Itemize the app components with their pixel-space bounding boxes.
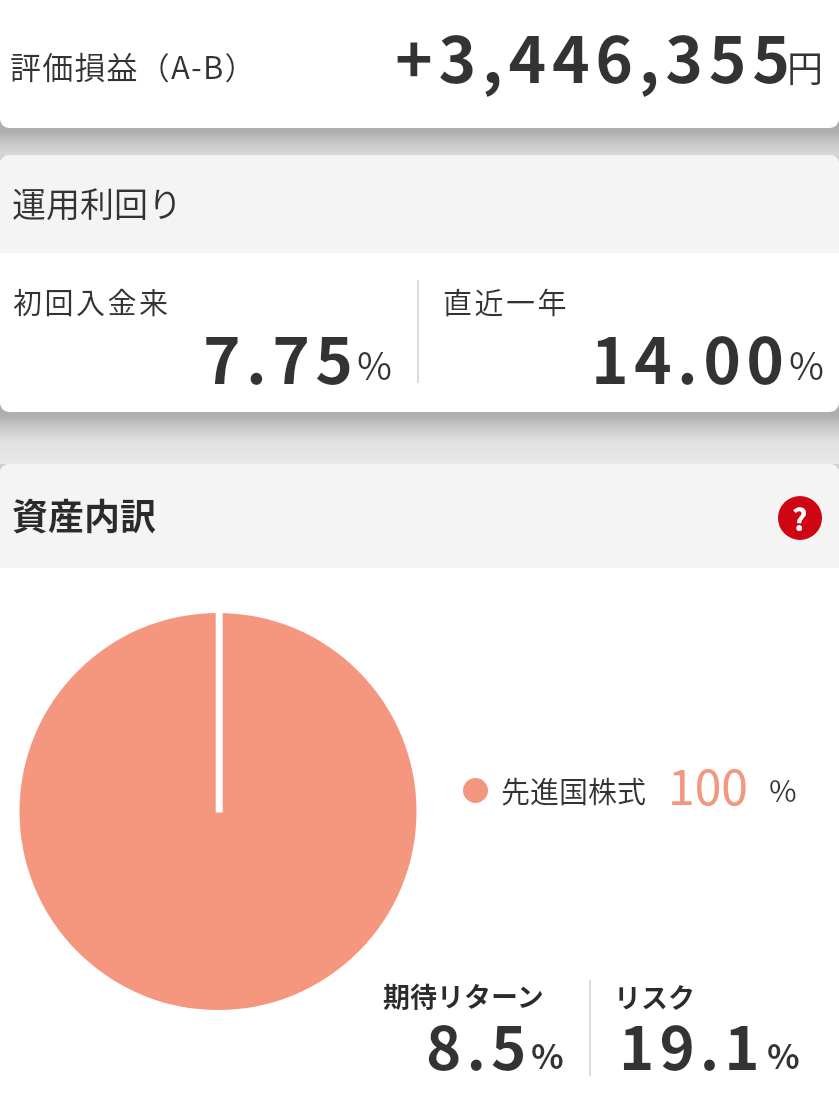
staticText: 期待リターン bbox=[383, 976, 544, 1015]
button[interactable] bbox=[0, 155, 839, 412]
staticText: % bbox=[531, 1030, 564, 1079]
staticText: 評価損益（A-B） bbox=[10, 43, 257, 88]
staticText: 運用利回り bbox=[12, 178, 182, 227]
staticText: 7.75 bbox=[203, 310, 359, 403]
staticText: リスク bbox=[614, 977, 695, 1016]
staticText: 14.00 bbox=[591, 310, 790, 403]
staticText: ? bbox=[792, 496, 808, 539]
staticText: 初回入金来 bbox=[13, 280, 171, 322]
staticText: 19.1 bbox=[619, 1000, 765, 1087]
staticText: 円 bbox=[787, 40, 824, 92]
staticText: % bbox=[767, 1030, 800, 1079]
button[interactable] bbox=[0, 464, 839, 1099]
staticText: 先進国株式 bbox=[501, 769, 647, 811]
button[interactable] bbox=[0, 0, 839, 128]
staticText: % bbox=[769, 767, 797, 810]
staticText: 直近一年 bbox=[443, 280, 570, 322]
staticText: +3,446,355 bbox=[395, 9, 796, 102]
staticText: % bbox=[789, 336, 824, 391]
staticText: 100 bbox=[668, 749, 748, 819]
staticText: 資産内訳 bbox=[12, 488, 157, 540]
staticText: 8.5 bbox=[426, 1000, 532, 1087]
staticText: % bbox=[357, 336, 392, 391]
button[interactable]: ヘルプ bbox=[778, 496, 822, 540]
